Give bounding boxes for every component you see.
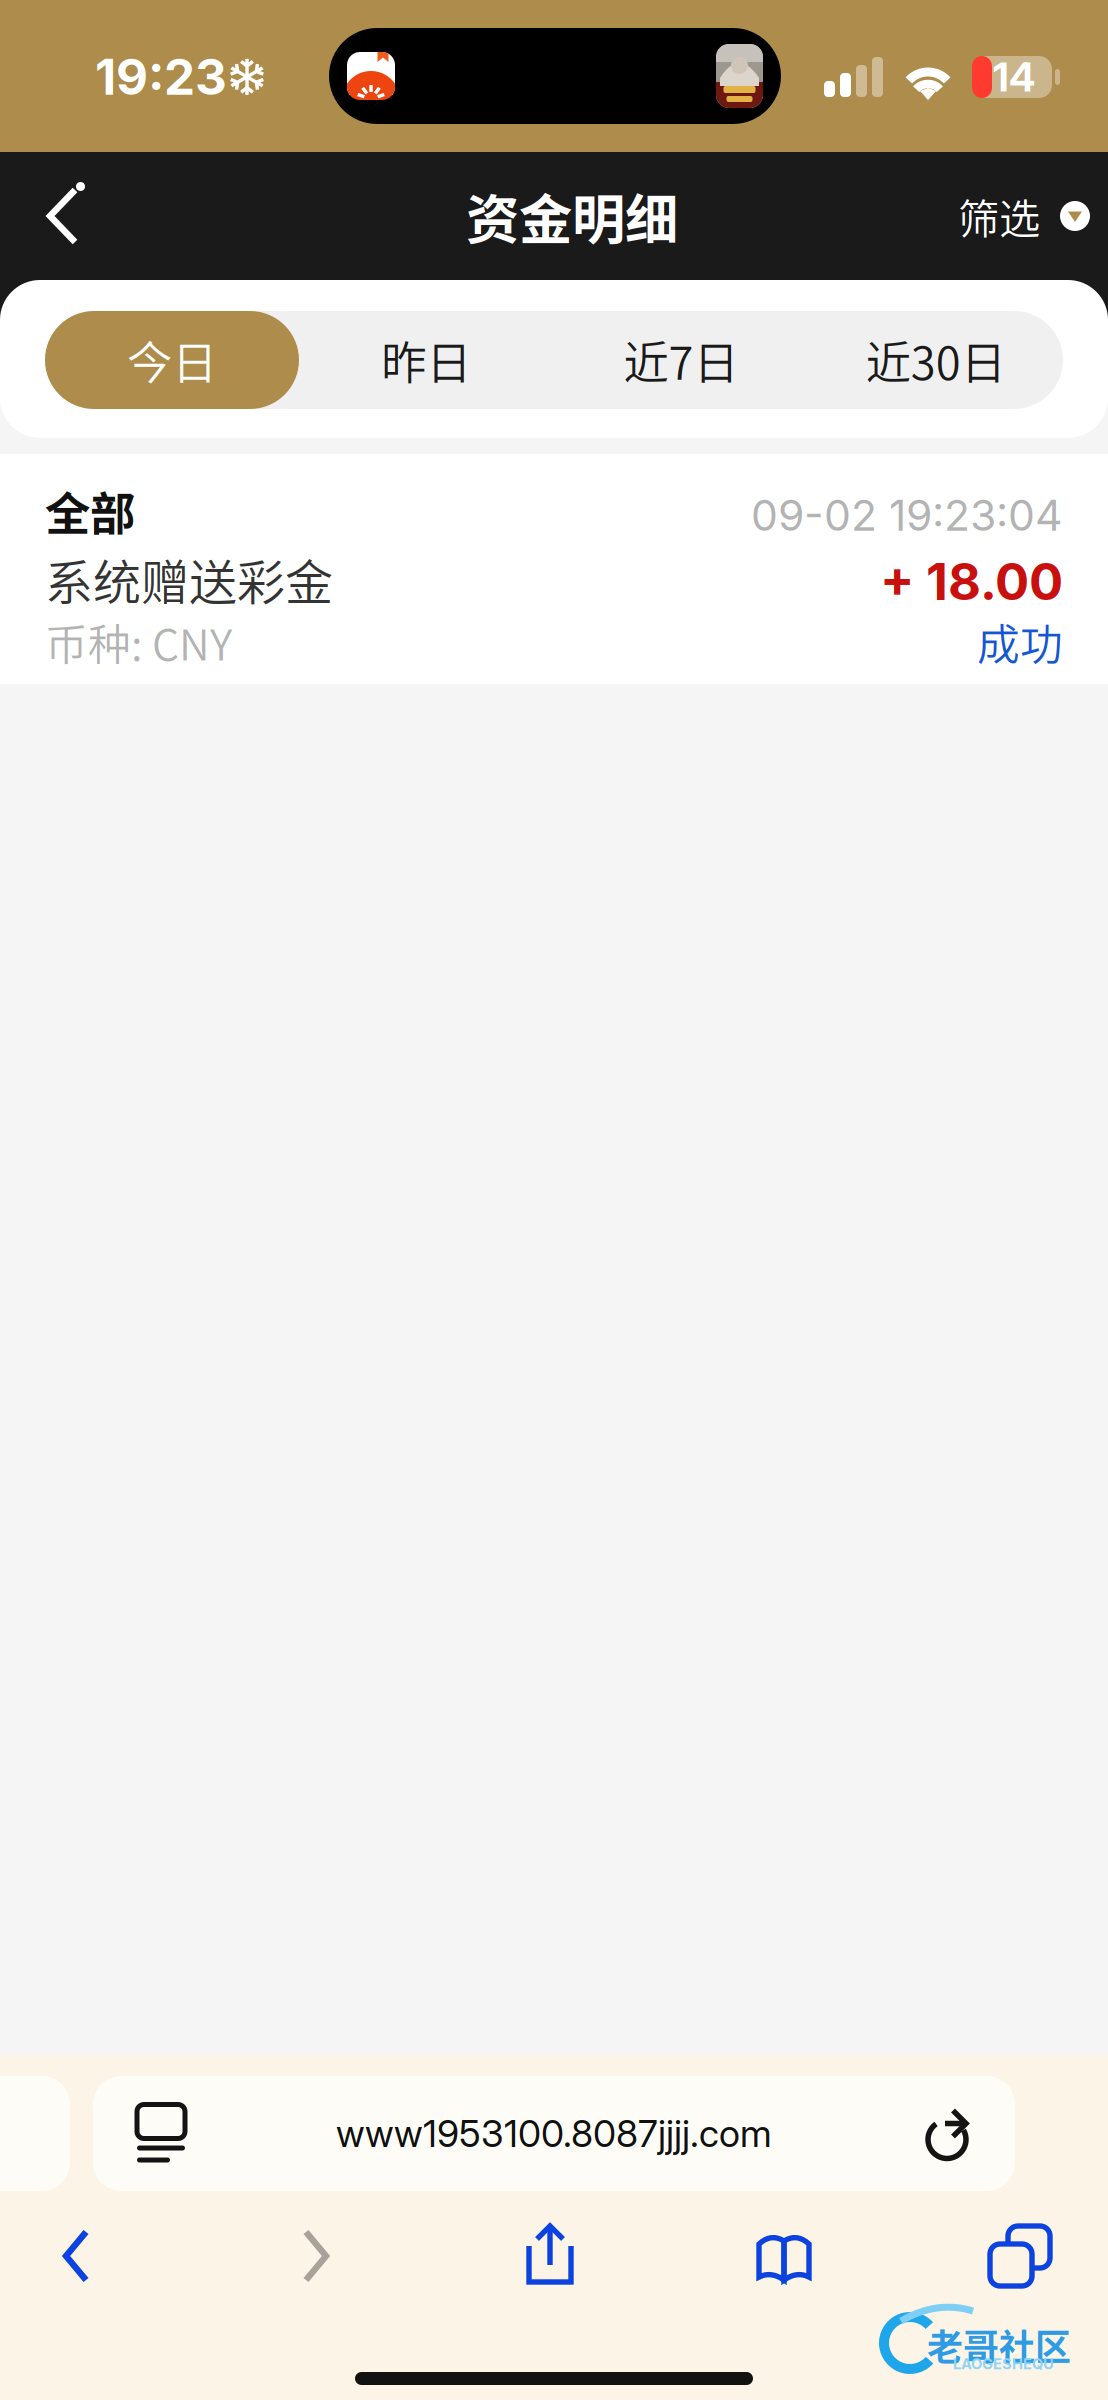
button[interactable]: Back <box>0 156 84 276</box>
button[interactable]: 近7日 <box>554 311 808 409</box>
staticText: + 18.00 <box>880 551 1063 612</box>
staticText: 近30日 <box>866 327 1006 393</box>
staticText: 14 <box>993 53 1035 101</box>
button[interactable]: Tabs <box>965 2208 1075 2304</box>
button[interactable]: 昨日 <box>299 311 554 409</box>
staticText: 老哥社区 <box>927 2319 1071 2371</box>
staticText: 19:23 <box>95 47 227 107</box>
staticText: 系统赠送彩金 <box>45 544 333 614</box>
staticText: 币种: CNY <box>45 611 232 673</box>
staticText: 资金明细 <box>466 177 678 255</box>
staticText: 09-02 19:23:04 <box>751 489 1063 541</box>
staticText: LAOGESHEQU <box>953 2355 1054 2373</box>
button[interactable]: 筛选 <box>958 156 1108 276</box>
staticText: 全部 <box>45 478 135 544</box>
staticText: 近7日 <box>623 327 738 393</box>
button[interactable]: Share <box>495 2206 605 2302</box>
button[interactable]: 全部 <box>0 454 1108 684</box>
staticText: 昨日 <box>381 327 471 393</box>
staticText: 筛选 <box>958 186 1040 246</box>
button[interactable]: 今日 <box>45 311 299 409</box>
button[interactable]: Bookmarks <box>729 2208 839 2304</box>
staticText: 成功 <box>977 611 1063 673</box>
button[interactable]: Back <box>21 2208 131 2304</box>
button[interactable]: www1953100.8087jjjj.com <box>93 2076 1015 2191</box>
button[interactable]: 近30日 <box>808 311 1063 409</box>
button[interactable]: Forward <box>261 2208 371 2304</box>
staticText: www1953100.8087jjjj.com <box>336 2111 772 2156</box>
staticText: 今日 <box>127 327 217 393</box>
